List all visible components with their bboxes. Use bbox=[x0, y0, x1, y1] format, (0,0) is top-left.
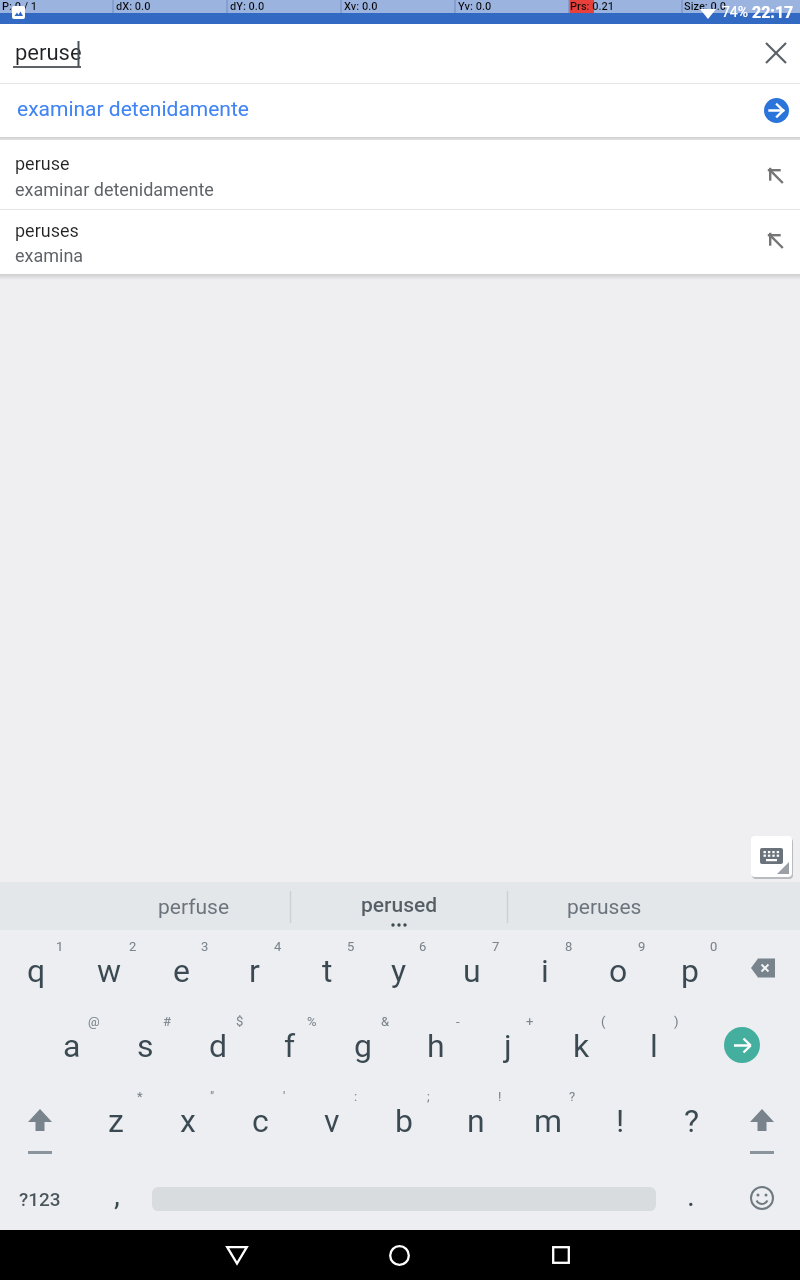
button[interactable] bbox=[36, 1005, 108, 1080]
staticText: " bbox=[210, 1089, 215, 1104]
button[interactable] bbox=[727, 930, 800, 1005]
button[interactable] bbox=[722, 1080, 800, 1155]
button[interactable] bbox=[254, 1005, 326, 1080]
staticText: c bbox=[252, 1102, 269, 1140]
button[interactable] bbox=[764, 98, 789, 123]
staticText: examinar detenidamente bbox=[17, 97, 249, 122]
staticText: u bbox=[463, 952, 481, 990]
button[interactable] bbox=[511, 1230, 611, 1280]
staticText: dY: 0.0 bbox=[230, 0, 265, 13]
button[interactable] bbox=[0, 142, 800, 209]
staticText: b bbox=[395, 1102, 413, 1140]
staticText: Yv: 0.0 bbox=[458, 0, 492, 13]
staticText: . bbox=[687, 1178, 695, 1213]
staticText: n bbox=[467, 1102, 485, 1140]
button[interactable] bbox=[0, 210, 800, 274]
staticText: d bbox=[209, 1027, 228, 1065]
staticText: e bbox=[173, 952, 190, 990]
staticText: f bbox=[284, 1027, 296, 1065]
staticText: 22:17 bbox=[752, 3, 794, 22]
staticText: i bbox=[541, 952, 549, 990]
button[interactable] bbox=[296, 1080, 368, 1155]
button[interactable] bbox=[349, 1230, 449, 1280]
button[interactable] bbox=[400, 1005, 472, 1080]
staticText: m bbox=[534, 1102, 563, 1140]
button[interactable] bbox=[152, 1080, 224, 1155]
staticText: 8 bbox=[565, 939, 573, 954]
button[interactable] bbox=[327, 1005, 399, 1080]
staticText: 1 bbox=[56, 939, 64, 954]
staticText: ! bbox=[616, 1102, 625, 1140]
button[interactable] bbox=[291, 930, 363, 1005]
staticText: r bbox=[249, 952, 260, 990]
staticText: Prs: 0.21 bbox=[570, 0, 615, 13]
staticText: z bbox=[108, 1102, 124, 1140]
button[interactable] bbox=[752, 29, 800, 77]
staticText: @ bbox=[88, 1014, 100, 1029]
staticText: ' bbox=[283, 1089, 286, 1104]
button[interactable] bbox=[292, 882, 507, 930]
staticText: peruses bbox=[567, 895, 642, 920]
staticText: 0 bbox=[710, 939, 718, 954]
staticText: w bbox=[97, 952, 122, 990]
staticText: 7 bbox=[492, 939, 500, 954]
button[interactable] bbox=[509, 882, 734, 930]
staticText: ? bbox=[684, 1102, 700, 1140]
button[interactable] bbox=[509, 930, 581, 1005]
staticText: dX: 0.0 bbox=[116, 0, 151, 13]
staticText: a bbox=[63, 1027, 81, 1065]
button[interactable] bbox=[182, 1005, 254, 1080]
button[interactable] bbox=[73, 930, 145, 1005]
button[interactable] bbox=[582, 930, 654, 1005]
staticText: ( bbox=[601, 1014, 606, 1029]
button[interactable] bbox=[65, 882, 290, 930]
button[interactable] bbox=[363, 930, 435, 1005]
staticText: Xv: 0.0 bbox=[344, 0, 378, 13]
button[interactable] bbox=[440, 1080, 512, 1155]
button[interactable] bbox=[472, 1005, 544, 1080]
button[interactable] bbox=[145, 930, 217, 1005]
staticText: h bbox=[427, 1027, 445, 1065]
staticText: o bbox=[609, 952, 628, 990]
staticText: * bbox=[137, 1089, 143, 1104]
staticText: : bbox=[354, 1089, 358, 1104]
button[interactable] bbox=[436, 930, 508, 1005]
button[interactable] bbox=[751, 836, 792, 877]
button[interactable] bbox=[618, 1005, 690, 1080]
button[interactable] bbox=[0, 1080, 80, 1155]
staticText: & bbox=[381, 1014, 390, 1029]
button[interactable] bbox=[224, 1080, 296, 1155]
staticText: t bbox=[322, 952, 333, 990]
staticText: q bbox=[27, 952, 46, 990]
button[interactable] bbox=[368, 1080, 440, 1155]
button[interactable] bbox=[81, 1155, 152, 1230]
staticText: Size: 0.0 bbox=[684, 0, 727, 13]
button[interactable] bbox=[584, 1080, 656, 1155]
staticText: k bbox=[573, 1027, 590, 1065]
button[interactable] bbox=[654, 930, 726, 1005]
button[interactable] bbox=[0, 84, 800, 137]
button[interactable] bbox=[656, 1155, 727, 1230]
button[interactable] bbox=[545, 1005, 617, 1080]
button[interactable] bbox=[656, 1080, 728, 1155]
button[interactable] bbox=[218, 930, 290, 1005]
button[interactable] bbox=[109, 1005, 181, 1080]
staticText: + bbox=[526, 1014, 534, 1029]
button[interactable] bbox=[0, 930, 72, 1005]
button[interactable] bbox=[0, 1155, 80, 1230]
staticText: ?123 bbox=[19, 1188, 61, 1210]
staticText: peruse bbox=[15, 153, 70, 174]
button[interactable] bbox=[727, 1155, 800, 1230]
button[interactable] bbox=[187, 1230, 287, 1280]
staticText: ? bbox=[569, 1089, 576, 1104]
staticText: ! bbox=[498, 1089, 502, 1104]
button[interactable] bbox=[512, 1080, 584, 1155]
staticText: % bbox=[307, 1014, 317, 1029]
staticText: - bbox=[456, 1014, 460, 1029]
staticText: peruses bbox=[15, 220, 79, 241]
button[interactable] bbox=[706, 1005, 800, 1080]
button[interactable] bbox=[80, 1080, 152, 1155]
staticText: perfuse bbox=[158, 895, 230, 920]
staticText: P: 0 / 1 bbox=[2, 0, 38, 13]
